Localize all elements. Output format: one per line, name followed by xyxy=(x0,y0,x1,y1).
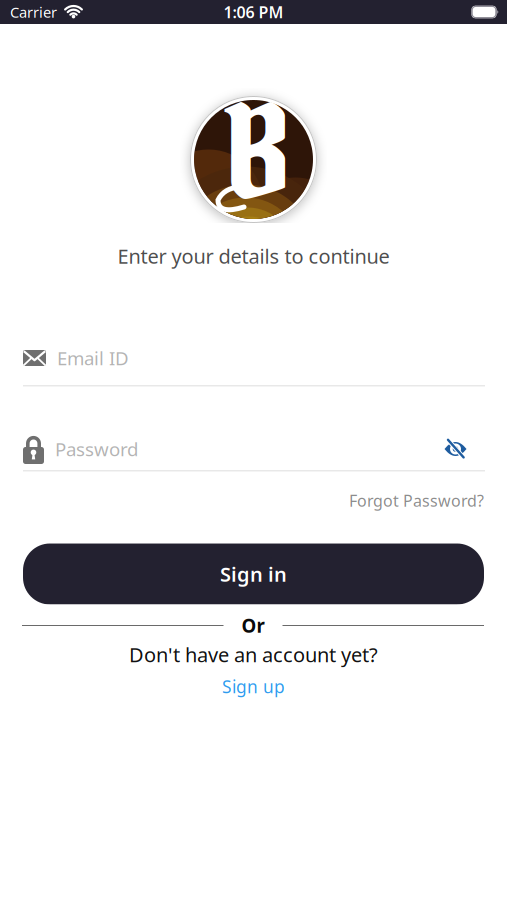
button[interactable]: Sign up xyxy=(222,673,285,699)
staticText: Password xyxy=(55,437,138,461)
button[interactable]: Password xyxy=(0,434,507,471)
button[interactable]: Sign in xyxy=(23,543,484,604)
staticText: Don't have an account yet? xyxy=(129,641,378,668)
button[interactable]: Show password xyxy=(444,439,467,459)
button[interactable]: Forgot Password? xyxy=(349,490,484,511)
staticText: Sign up xyxy=(222,675,285,698)
staticText: Carrier xyxy=(10,2,57,22)
staticText: Enter your details to continue xyxy=(117,243,389,269)
staticText: Email ID xyxy=(57,346,129,370)
staticText: Or xyxy=(241,613,264,638)
staticText: B xyxy=(231,73,284,234)
staticText: 1:06 PM xyxy=(223,1,283,23)
staticText: Forgot Password? xyxy=(349,490,484,511)
button[interactable]: Email ID xyxy=(0,345,507,386)
staticText: Sign in xyxy=(220,561,287,587)
